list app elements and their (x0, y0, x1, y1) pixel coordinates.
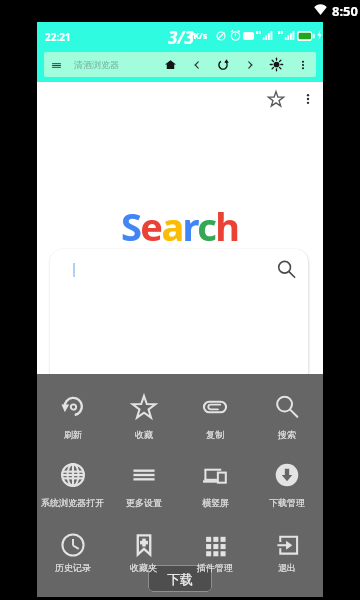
button[interactable]: More options (292, 52, 314, 77)
staticText: Search (121, 200, 239, 252)
button[interactable]: Bookmark (266, 89, 286, 109)
staticText: 3/3 (168, 26, 194, 49)
staticText: 搜索 (278, 429, 296, 440)
button[interactable]: 刷新 (37, 388, 108, 443)
staticText: 22:21 (45, 30, 71, 44)
staticText: 清酒浏览器 (74, 59, 119, 70)
button[interactable]: 系统浏览器打开 (37, 456, 108, 511)
button[interactable]: Page menu (298, 89, 318, 109)
staticText: 横竖屏 (202, 497, 229, 508)
button[interactable]: 插件管理 (179, 526, 251, 576)
staticText: 8:50 (332, 2, 358, 20)
staticText: 插件管理 (197, 562, 233, 573)
staticText: 收藏夹 (130, 562, 157, 573)
staticText: 更多设置 (126, 497, 162, 508)
staticText: 系统浏览器打开 (41, 497, 104, 508)
button[interactable]: 下载管理 (251, 456, 323, 511)
button[interactable]: 收藏夹 (108, 526, 179, 576)
button[interactable]: Menu (47, 56, 65, 74)
button[interactable]: 收藏 (108, 388, 179, 443)
button[interactable]: 更多设置 (108, 456, 179, 511)
staticText: 刷新 (64, 429, 82, 440)
staticText: 复制 (206, 429, 224, 440)
button[interactable]: Forward (239, 52, 261, 77)
button[interactable]: 历史记录 (37, 526, 108, 576)
button[interactable]: Brightness (265, 52, 287, 77)
button[interactable]: 退出 (251, 526, 323, 576)
button[interactable]: 搜索 (251, 388, 323, 443)
button[interactable]: 复制 (179, 388, 251, 443)
staticText: 退出 (278, 562, 296, 573)
staticText: 下载 (167, 571, 193, 587)
button[interactable]: 下载 (148, 565, 212, 592)
button[interactable]: Refresh (212, 52, 234, 77)
staticText: 收藏 (135, 429, 153, 440)
button[interactable]: Back (186, 52, 208, 77)
button[interactable]: 横竖屏 (179, 456, 251, 511)
button[interactable]: Home (159, 52, 181, 77)
staticText: 4K/s (188, 29, 208, 41)
staticText: 历史记录 (55, 562, 91, 573)
staticText: 下载管理 (269, 497, 305, 508)
button[interactable] (50, 249, 308, 409)
